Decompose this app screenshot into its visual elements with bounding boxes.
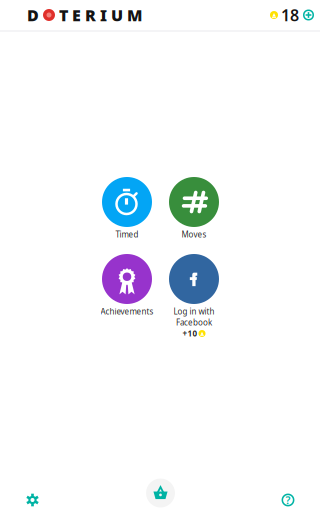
button[interactable]: Timed [72, 177, 182, 240]
staticText: Facebook [176, 317, 212, 328]
staticText: +10 [182, 328, 197, 339]
button[interactable]: Log in with [139, 254, 249, 339]
staticText: Timed [115, 229, 138, 240]
button[interactable]: Add coins [302, 7, 315, 23]
staticText: T [59, 4, 68, 26]
button[interactable]: Achievements [72, 254, 182, 317]
staticText: D [27, 4, 39, 26]
button[interactable]: Shop [141, 474, 179, 512]
staticText: M [127, 4, 142, 26]
staticText: Log in with [173, 306, 214, 317]
staticText: U [111, 4, 123, 26]
button[interactable]: Moves [139, 177, 249, 240]
button[interactable]: Settings [10, 483, 54, 512]
staticText: R [85, 4, 96, 26]
staticText: E [72, 4, 81, 26]
staticText: Achievements [100, 306, 153, 317]
staticText: I [100, 4, 107, 26]
staticText: ? [285, 493, 290, 507]
button[interactable]: Help [266, 483, 310, 512]
staticText: 18 [281, 4, 299, 26]
staticText: Moves [181, 229, 206, 240]
